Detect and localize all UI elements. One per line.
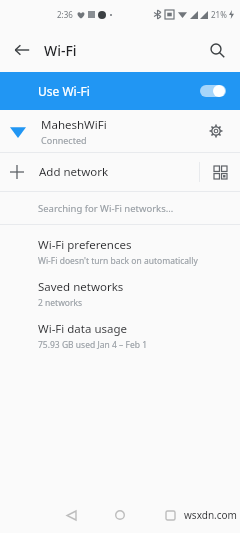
- button[interactable]: Wi-Fi data usage: [0, 315, 240, 357]
- button[interactable]: Use Wi-Fi: [0, 72, 240, 110]
- staticText: Wi-Fi preferences: [38, 237, 132, 253]
- staticText: 2:36: [57, 9, 73, 20]
- staticText: Saved networks: [38, 279, 124, 295]
- button[interactable]: MaheshWiFi: [0, 110, 240, 152]
- button[interactable]: Add network: [0, 153, 199, 191]
- button[interactable]: Search: [202, 35, 232, 65]
- staticText: wsxdn.com: [184, 508, 237, 522]
- button[interactable]: Home: [107, 502, 133, 528]
- staticText: Connected: [41, 134, 87, 146]
- staticText: 75.93 GB used Jan 4 – Feb 1: [38, 339, 148, 351]
- button[interactable]: Scan QR code: [200, 153, 240, 191]
- staticText: Use Wi-Fi: [38, 83, 90, 99]
- staticText: Searching for Wi-Fi networks…: [38, 202, 174, 215]
- button[interactable]: Wi-Fi preferences: [0, 231, 240, 273]
- staticText: Wi-Fi doesn't turn back on automatically: [38, 255, 198, 267]
- button[interactable]: Back: [58, 502, 84, 528]
- button[interactable]: Back: [6, 34, 38, 66]
- staticText: Wi-Fi: [44, 41, 77, 60]
- staticText: Add network: [39, 164, 109, 180]
- button[interactable]: Network settings: [202, 117, 230, 145]
- button[interactable]: Saved networks: [0, 273, 240, 315]
- staticText: Wi-Fi data usage: [38, 321, 128, 337]
- staticText: 2 networks: [38, 297, 83, 309]
- button[interactable]: Recent apps: [157, 502, 183, 528]
- staticText: 21%: [211, 9, 227, 20]
- staticText: MaheshWiFi: [41, 117, 107, 133]
